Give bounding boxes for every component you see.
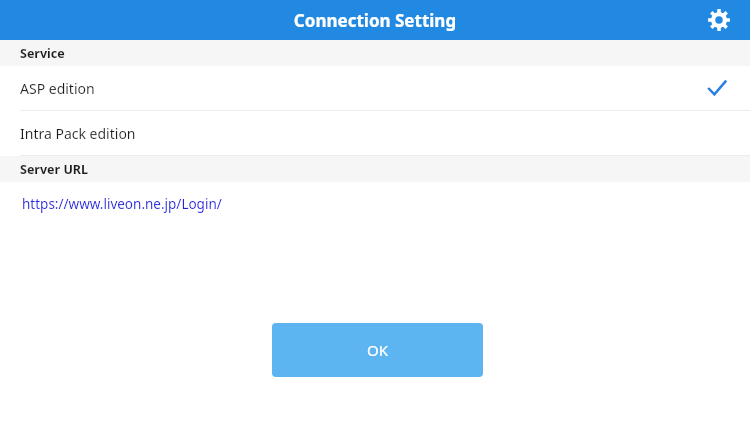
staticText: https://www.liveon.ne.jp/Login/ bbox=[22, 195, 222, 213]
button[interactable]: ASP edition bbox=[0, 66, 750, 110]
button[interactable]: Settings bbox=[702, 3, 736, 37]
staticText: Connection Setting bbox=[0, 9, 750, 32]
staticText: ASP edition bbox=[20, 79, 95, 98]
button[interactable]: Intra Pack edition bbox=[0, 111, 750, 155]
staticText: Service bbox=[20, 45, 65, 62]
staticText: Intra Pack edition bbox=[20, 124, 136, 143]
button[interactable]: OK bbox=[272, 323, 483, 377]
button[interactable]: https://www.liveon.ne.jp/Login/ bbox=[0, 182, 750, 226]
staticText: OK bbox=[367, 340, 389, 360]
staticText: Server URL bbox=[20, 161, 89, 178]
